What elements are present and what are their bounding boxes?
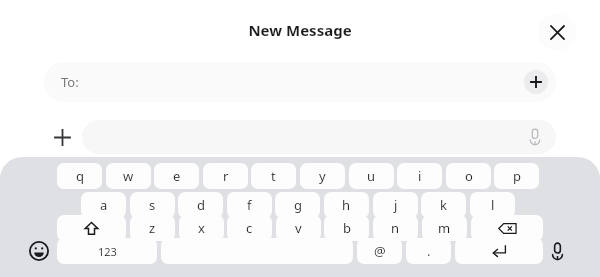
staticText: To: — [61, 73, 79, 91]
staticText: q — [76, 167, 84, 185]
button[interactable]: g — [275, 192, 320, 218]
button[interactable]: n — [373, 215, 418, 241]
button[interactable]: Add recipient — [524, 70, 548, 94]
staticText: a — [100, 196, 108, 214]
staticText: h — [342, 196, 351, 214]
button[interactable]: m — [422, 215, 467, 241]
button[interactable]: r — [203, 163, 248, 189]
button[interactable]: l — [470, 192, 515, 218]
button[interactable]: s — [130, 192, 175, 218]
button[interactable]: x — [179, 215, 224, 241]
staticText: e — [173, 167, 181, 185]
staticText: o — [465, 167, 473, 185]
button[interactable]: u — [349, 163, 394, 189]
button[interactable]: 123 — [57, 238, 157, 264]
button[interactable]: backspace — [471, 215, 543, 241]
button[interactable]: y — [300, 163, 345, 189]
staticText: r — [223, 167, 229, 185]
button[interactable]: k — [421, 192, 466, 218]
staticText: x — [198, 219, 205, 237]
button[interactable]: enter — [455, 238, 543, 264]
staticText: i — [418, 167, 422, 185]
button[interactable]: . — [406, 238, 451, 264]
staticText: z — [149, 219, 156, 237]
staticText: l — [491, 196, 495, 214]
staticText: New Message — [248, 20, 352, 40]
staticText: p — [513, 167, 521, 185]
button[interactable]: Voice input — [526, 128, 544, 146]
button[interactable]: t — [251, 163, 296, 189]
staticText: m — [438, 219, 451, 237]
button[interactable]: shift — [57, 215, 126, 241]
button[interactable]: p — [494, 163, 539, 189]
button[interactable]: To: — [44, 62, 556, 102]
button[interactable]: z — [130, 215, 175, 241]
button[interactable]: v — [276, 215, 321, 241]
button[interactable]: Close — [538, 13, 576, 51]
staticText: t — [271, 167, 276, 185]
staticText: k — [440, 196, 447, 214]
staticText: b — [343, 219, 351, 237]
button[interactable]: f — [227, 192, 272, 218]
button[interactable]: w — [106, 163, 151, 189]
staticText: f — [247, 196, 252, 214]
staticText: s — [149, 196, 156, 214]
button[interactable]: Voice input — [82, 120, 556, 154]
button[interactable]: i — [397, 163, 442, 189]
staticText: @ — [374, 242, 386, 260]
button[interactable]: o — [446, 163, 491, 189]
staticText: g — [294, 196, 302, 214]
button[interactable]: b — [324, 215, 369, 241]
button[interactable]: a — [81, 192, 126, 218]
staticText: v — [295, 219, 302, 237]
button[interactable]: c — [227, 215, 272, 241]
staticText: w — [123, 167, 134, 185]
staticText: . — [427, 242, 431, 260]
staticText: n — [391, 219, 400, 237]
staticText: 123 — [98, 244, 117, 259]
button[interactable]: @ — [357, 238, 402, 264]
button[interactable]: Add attachment — [46, 121, 78, 153]
staticText: d — [197, 196, 205, 214]
staticText: j — [394, 196, 398, 214]
staticText: u — [367, 167, 376, 185]
staticText: y — [319, 167, 326, 185]
button[interactable]: h — [324, 192, 369, 218]
button[interactable]: d — [178, 192, 223, 218]
button[interactable]: Emoji — [26, 238, 52, 264]
button[interactable]: j — [373, 192, 418, 218]
button[interactable]: Voice typing — [544, 238, 570, 264]
button[interactable]: q — [57, 163, 102, 189]
button[interactable]: e — [154, 163, 199, 189]
staticText: c — [246, 219, 253, 237]
